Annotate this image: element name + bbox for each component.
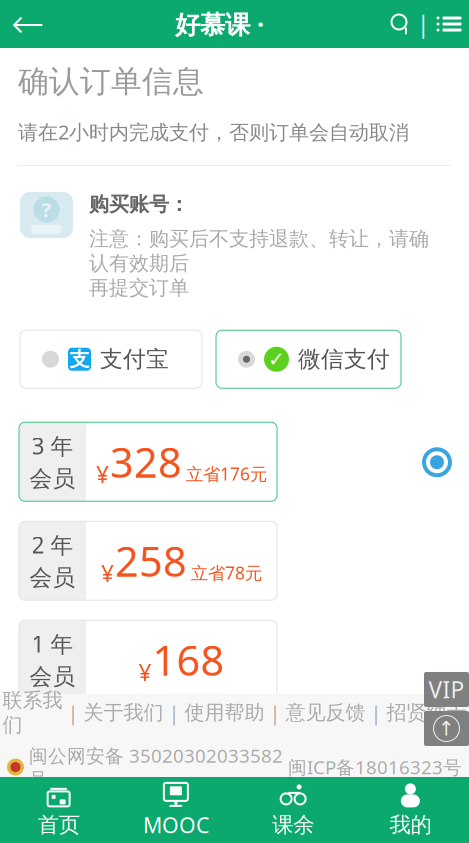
button[interactable]: 招贤纳士 (386, 700, 466, 725)
button[interactable]: Menu (429, 0, 469, 48)
staticText: 3 年 (31, 431, 73, 461)
staticText: ¥ (96, 459, 109, 489)
staticText: 使用帮助 (184, 700, 264, 725)
staticText: ¥ (138, 657, 151, 687)
staticText: 我的 (389, 812, 431, 838)
staticText: 课余 (272, 812, 314, 838)
staticText: 328 (110, 434, 182, 489)
staticText: 立省78元 (191, 561, 262, 584)
button[interactable]: 我的 (352, 777, 469, 843)
button[interactable]: 意见反馈 (285, 700, 365, 725)
button[interactable]: ✓ (216, 330, 401, 388)
staticText: ← (11, 1, 45, 47)
staticText: 确认订单信息 (18, 63, 204, 100)
staticText: 首页 (38, 812, 80, 838)
staticText: ? (41, 196, 51, 223)
staticText: 招贤纳士 (386, 700, 466, 725)
button[interactable]: 使用帮助 (184, 700, 264, 725)
button[interactable]: Select 3 year plan (417, 442, 457, 482)
staticText: 联系我们 (2, 688, 62, 737)
staticText: | (163, 699, 184, 726)
button[interactable]: 3 年 (19, 422, 277, 501)
button[interactable]: 首页 (0, 777, 117, 843)
staticText: VIP (428, 674, 464, 704)
staticText: 258 (115, 533, 187, 588)
staticText: 支 (69, 347, 89, 372)
button[interactable]: 支 (20, 330, 202, 388)
staticText: 会员 (29, 465, 75, 493)
button[interactable]: 课余 (234, 777, 352, 843)
staticText: ↑ (438, 717, 455, 740)
staticText: 1 年 (31, 629, 73, 659)
staticText: 立省176元 (186, 462, 267, 485)
staticText: 闽公网安备 35020302033582号 (29, 743, 283, 791)
staticText: 关于我们 (83, 700, 163, 725)
staticText: 注意：购买后不支持退款、转让，请确认有效期后 再提交订单 (89, 226, 429, 300)
button[interactable]: 联系我们 (2, 688, 62, 737)
staticText: | (62, 699, 83, 726)
staticText: 购买账号： (89, 192, 189, 217)
staticText: | (417, 9, 429, 39)
staticText: 闽ICP备18016323号 (288, 755, 462, 779)
staticText: | (365, 699, 386, 726)
button[interactable]: Back (0, 0, 56, 48)
button[interactable]: Back to top (424, 711, 469, 746)
button[interactable]: 1 年 (19, 620, 277, 699)
staticText: | (264, 699, 285, 726)
staticText: 会员 (29, 564, 75, 592)
button[interactable]: 2 年 (19, 521, 277, 600)
staticText: ¥ (101, 558, 114, 588)
staticText: 意见反馈 (285, 700, 365, 725)
button[interactable]: Search (383, 0, 417, 48)
button[interactable]: 关于我们 (83, 700, 163, 725)
button[interactable]: VIP (424, 672, 469, 707)
button[interactable]: MOOC (117, 777, 234, 843)
staticText: MOOC (143, 811, 209, 839)
staticText: 请在2小时内完成支付，否则订单会自动取消 (18, 118, 409, 145)
staticText: 2 年 (31, 530, 73, 560)
staticText: 好慕课 · (175, 7, 264, 41)
staticText: 支付宝 (100, 345, 169, 373)
staticText: 会员 (29, 663, 75, 691)
staticText: 168 (152, 632, 224, 687)
staticText: 微信支付 (298, 345, 390, 373)
staticText: ✓ (268, 348, 285, 371)
